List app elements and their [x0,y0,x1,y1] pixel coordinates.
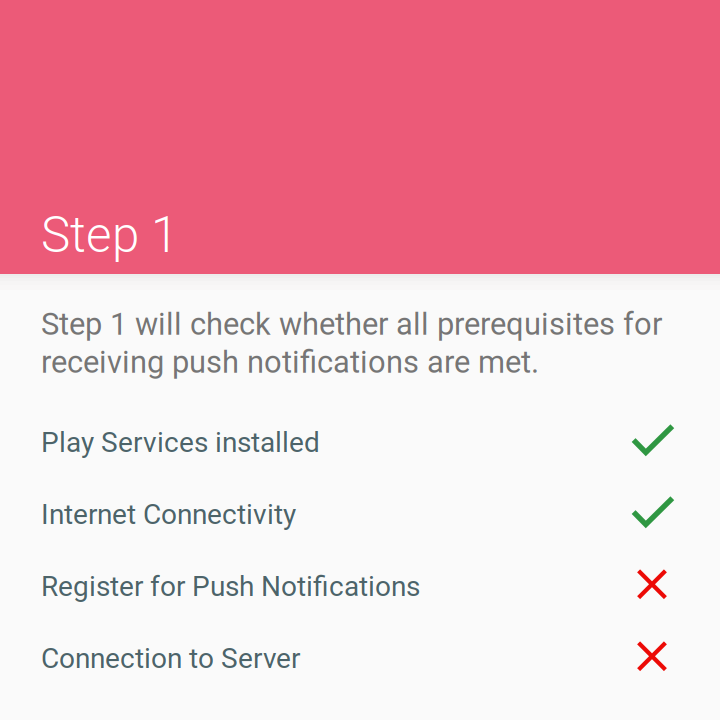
staticText: Register for Push Notifications [41,570,420,603]
button[interactable]: Connection to Server [0,622,720,694]
staticText: Connection to Server [41,642,300,675]
staticText: receiving push notifications are met. [41,344,539,380]
staticText: Step 1 [41,206,178,264]
button[interactable]: Register for Push Notifications [0,550,720,622]
button[interactable]: Internet Connectivity [0,478,720,550]
staticText: Play Services installed [41,426,320,459]
staticText: Internet Connectivity [41,498,296,531]
staticText: Step 1 will check whether all prerequisi… [41,306,662,342]
button[interactable]: Play Services installed [0,406,720,478]
